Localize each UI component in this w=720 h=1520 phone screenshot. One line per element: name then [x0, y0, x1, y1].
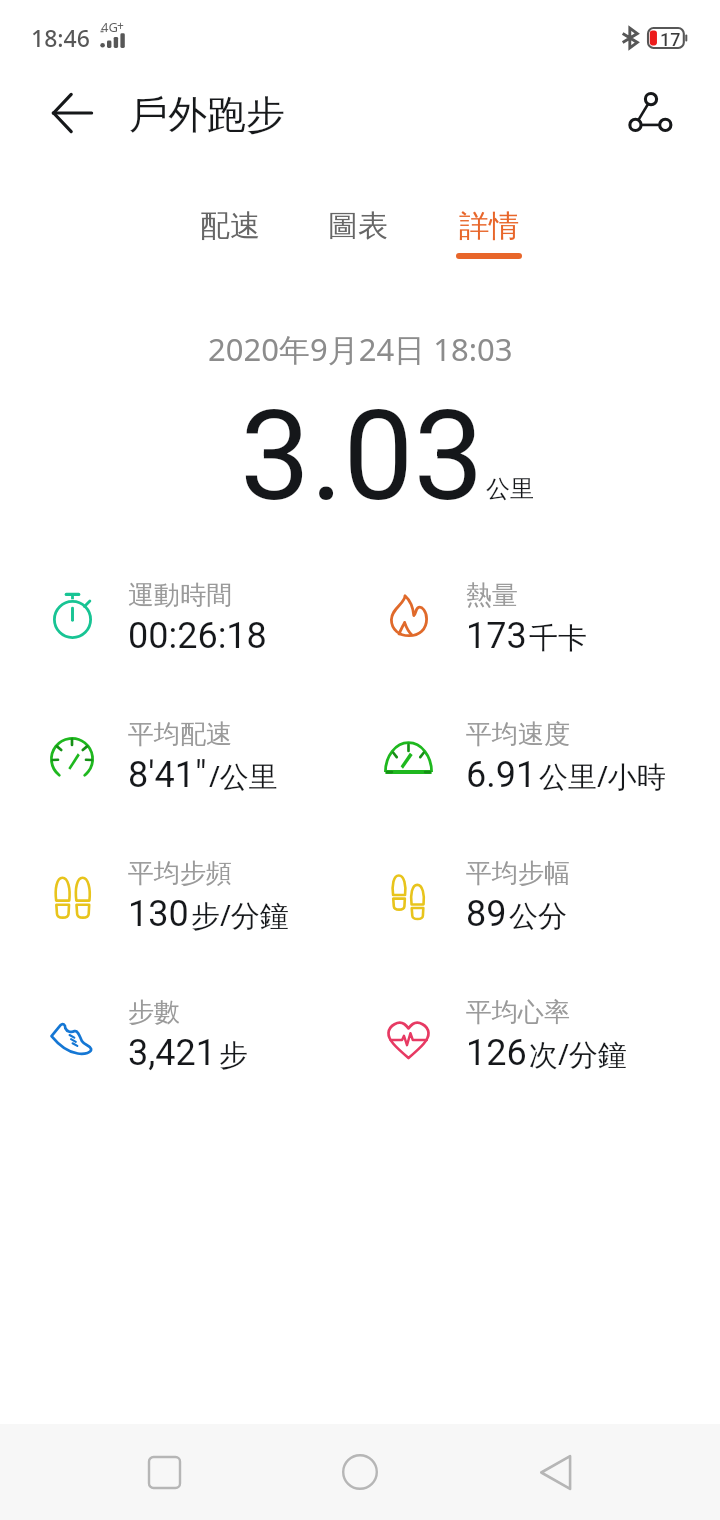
staticText: 平均步幅: [466, 857, 570, 890]
staticText: /公里: [209, 756, 278, 796]
staticText: 4G: [101, 18, 118, 36]
staticText: 公里/小時: [539, 756, 666, 796]
staticText: 平均配速: [128, 718, 232, 751]
button[interactable]: 圖表: [311, 207, 404, 275]
button[interactable]: 平均心率: [377, 986, 697, 1090]
staticText: 平均步頻: [128, 857, 232, 890]
staticText: 詳情: [459, 207, 519, 245]
staticText: 次/分鐘: [529, 1034, 627, 1074]
staticText: 17: [660, 29, 681, 50]
staticText: 130: [128, 893, 189, 935]
button[interactable]: 步數: [41, 986, 361, 1090]
staticText: 步: [219, 1037, 248, 1074]
staticText: 千卡: [529, 620, 587, 657]
staticText: 步/分鐘: [191, 895, 289, 935]
staticText: 平均心率: [466, 996, 570, 1029]
staticText: 配速: [200, 207, 260, 245]
staticText: 8'41": [128, 754, 207, 796]
staticText: 運動時間: [128, 579, 232, 612]
button[interactable]: 平均配速: [41, 708, 361, 812]
staticText: +: [117, 17, 124, 33]
staticText: 公里: [486, 474, 534, 504]
button[interactable]: 平均速度: [377, 708, 697, 812]
button[interactable]: Home: [320, 1424, 400, 1520]
button[interactable]: Recents: [124, 1424, 204, 1520]
staticText: 戶外跑步: [129, 90, 285, 139]
button[interactable]: Back: [37, 79, 107, 147]
staticText: 公分: [509, 898, 567, 935]
staticText: 2020年9月24日 18:03: [208, 328, 513, 370]
button[interactable]: 運動時間: [41, 569, 361, 673]
staticText: 熱量: [466, 579, 518, 612]
staticText: 圖表: [328, 207, 388, 245]
button[interactable]: 平均步幅: [377, 847, 697, 951]
staticText: 平均速度: [466, 718, 570, 751]
staticText: 3,421: [128, 1032, 217, 1074]
staticText: 89: [466, 893, 507, 935]
staticText: 18:46: [31, 22, 90, 53]
staticText: 6.91: [466, 754, 537, 796]
button[interactable]: 詳情: [442, 207, 535, 275]
staticText: 173: [466, 615, 527, 657]
button[interactable]: Back: [516, 1424, 596, 1520]
button[interactable]: 平均步頻: [41, 847, 361, 951]
staticText: 步數: [128, 996, 180, 1029]
staticText: 00:26:18: [128, 615, 267, 657]
staticText: 3.03: [240, 383, 484, 529]
button[interactable]: Share: [615, 78, 687, 146]
staticText: 126: [466, 1032, 527, 1074]
button[interactable]: 熱量: [377, 569, 697, 673]
button[interactable]: 配速: [183, 207, 276, 275]
